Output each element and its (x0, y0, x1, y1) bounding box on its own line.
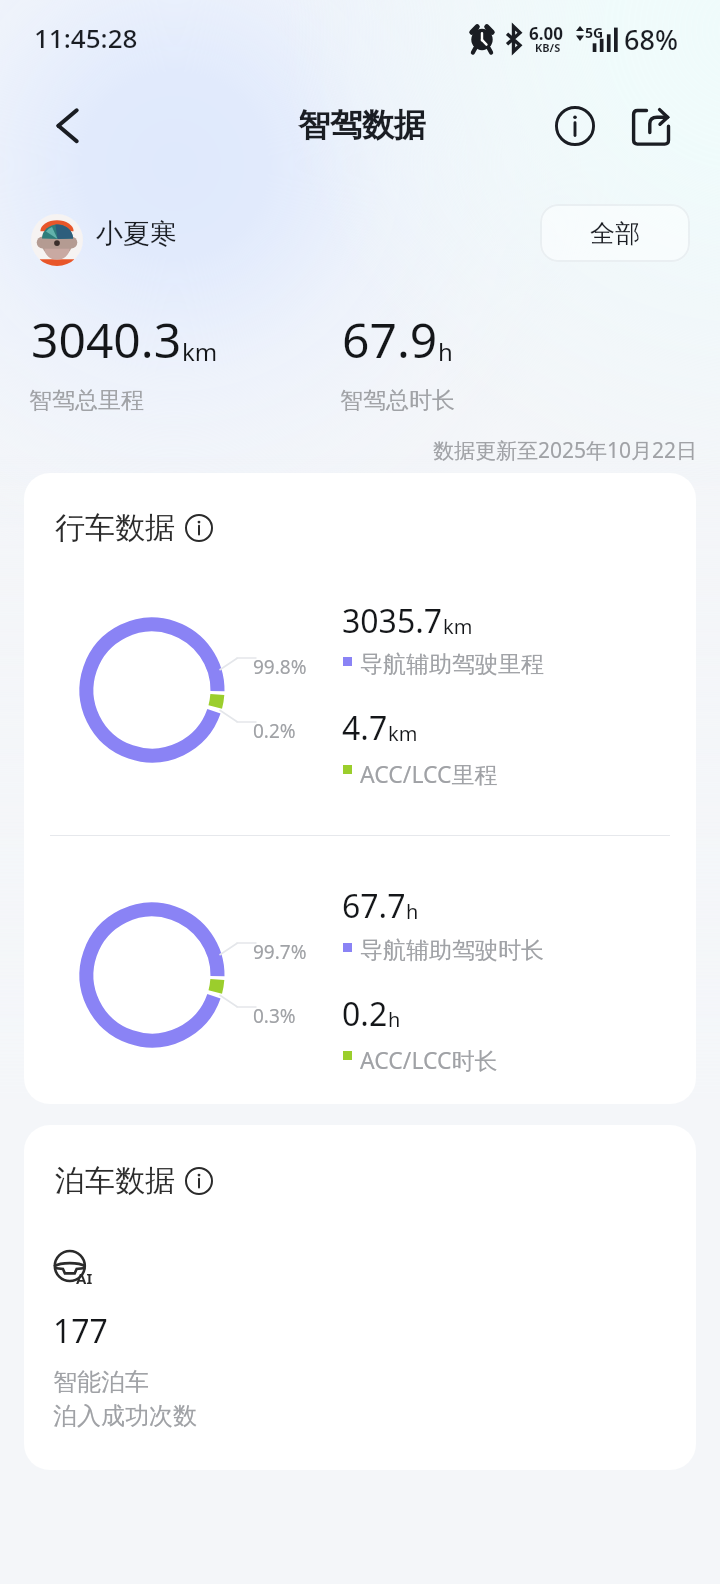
staticText: h (438, 335, 453, 368)
staticText: 0.2% (253, 718, 296, 744)
button[interactable]: Share (626, 102, 674, 150)
staticText: KB/S (535, 40, 561, 55)
staticText: 67.9 (342, 307, 438, 372)
staticText: h (388, 1006, 401, 1033)
staticText: 数据更新至2025年10月22日 (0, 436, 697, 465)
staticText: 6.00 (529, 22, 563, 45)
staticText: AI (76, 1268, 93, 1288)
staticText: 行车数据 (55, 509, 175, 547)
staticText: 3040.3 (31, 307, 182, 372)
staticText: h (406, 898, 419, 925)
button[interactable]: Back (40, 102, 90, 152)
staticText: 导航辅助驾驶里程 (360, 650, 544, 679)
staticText: 3035.7 (342, 599, 443, 643)
staticText: 智驾总里程 (29, 386, 144, 415)
staticText: 4.7 (342, 706, 388, 750)
staticText: km (388, 720, 418, 747)
staticText: 5G (585, 23, 604, 42)
staticText: 泊入成功次数 (53, 1401, 197, 1431)
staticText: 177 (53, 1309, 108, 1353)
staticText: 0.3% (253, 1003, 296, 1029)
staticText: 0.2 (342, 992, 388, 1036)
staticText: ACC/LCC时长 (360, 1044, 498, 1075)
staticText: 导航辅助驾驶时长 (360, 936, 544, 965)
staticText: 泊车数据 (55, 1162, 175, 1200)
staticText: 智能泊车 (53, 1367, 149, 1397)
staticText: 67.7 (342, 884, 406, 928)
staticText: 智驾总时长 (340, 386, 455, 415)
button[interactable]: Info (183, 512, 215, 544)
staticText: 智驾数据 (298, 105, 426, 145)
staticText: 小夏寒 (96, 217, 177, 251)
staticText: 99.7% (253, 939, 307, 965)
staticText: 11:45:28 (34, 20, 138, 55)
staticText: 全部 (590, 218, 640, 249)
button[interactable]: 全部 (540, 204, 690, 262)
button[interactable]: Info (183, 1165, 215, 1197)
staticText: km (182, 335, 218, 368)
staticText: ACC/LCC里程 (360, 758, 498, 789)
staticText: km (443, 613, 473, 640)
staticText: 68% (624, 21, 678, 58)
staticText: 99.8% (253, 654, 307, 680)
button[interactable]: Info (551, 102, 599, 150)
